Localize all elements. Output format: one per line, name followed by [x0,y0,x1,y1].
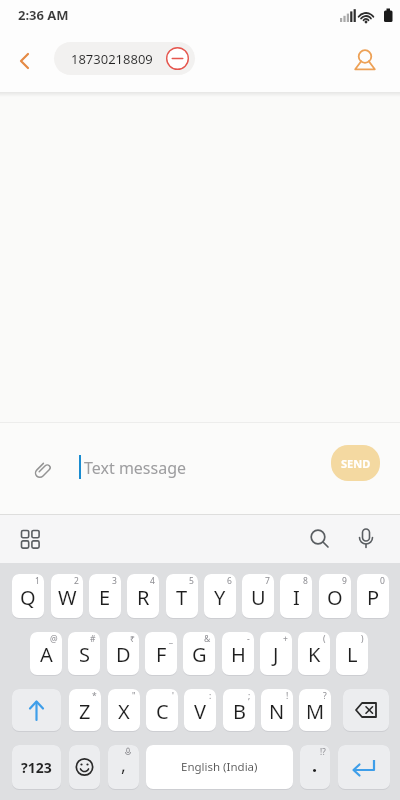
button[interactable]: English (India) [146,745,293,790]
staticText: 18730218809 [71,50,153,68]
button[interactable] [308,527,332,551]
button[interactable]: P [357,574,389,619]
staticText: * [92,690,97,702]
button[interactable] [343,689,389,732]
button[interactable]: C [146,689,178,732]
staticText: # [90,633,96,645]
staticText: J [273,641,279,668]
staticText: U [251,584,266,611]
staticText: Y [214,584,226,611]
staticText: ) [361,633,364,645]
staticText: O [327,584,343,611]
staticText: ; [248,690,251,702]
staticText: C [156,698,169,725]
staticText: " [132,690,136,702]
button[interactable] [0,39,44,83]
button[interactable]: ?123 [12,745,61,790]
button[interactable]: N [261,689,293,732]
button[interactable]: Q [12,574,44,619]
button[interactable]: . [300,745,330,790]
button[interactable]: T [166,574,198,619]
staticText: H [231,641,246,668]
staticText: 9 [342,575,347,587]
button[interactable]: 18730218809 [54,42,195,75]
staticText: _ [169,633,173,645]
staticText: 5 [189,575,194,587]
staticText: N [269,698,285,725]
staticText: M [306,698,325,725]
button[interactable]: L [336,632,368,676]
staticText: 8 [303,575,308,587]
staticText: R [137,584,150,611]
staticText: F [156,641,167,668]
button[interactable]: B [223,689,255,732]
staticText: ( [323,633,326,645]
staticText: P [367,584,380,611]
button[interactable]: K [298,632,330,676]
button[interactable] [351,47,379,75]
button[interactable]: Z [69,689,101,732]
button[interactable] [20,529,40,549]
staticText: : [209,690,212,702]
button[interactable]: G [183,632,215,676]
staticText: ₹ [130,633,135,645]
staticText: . [312,753,318,778]
button[interactable]: A [30,632,62,676]
button[interactable]: E [89,574,121,619]
staticText: !? [320,746,326,757]
staticText: 7 [265,575,270,587]
staticText: SEND [341,456,371,471]
staticText: 2:36 AM [18,6,69,24]
button[interactable] [12,689,61,732]
staticText: I [293,584,300,611]
staticText: V [194,698,206,725]
staticText: + [283,633,288,645]
button[interactable]: V [184,689,216,732]
button[interactable]: I [280,574,312,619]
staticText: L [347,641,358,668]
button[interactable]: , [108,745,139,790]
staticText: W [58,584,77,611]
button[interactable]: S [68,632,100,676]
button[interactable]: U [242,574,274,619]
button[interactable]: H [222,632,254,676]
staticText: 6 [227,575,232,587]
staticText: G [192,641,207,668]
staticText: 0 [380,575,385,587]
button[interactable]: R [127,574,159,619]
staticText: S [79,641,90,668]
button[interactable]: D [107,632,139,676]
staticText: Text message [84,457,187,479]
staticText: X [118,698,130,725]
staticText: 3 [112,575,117,587]
button[interactable]: SEND [331,445,380,481]
button[interactable]: M [299,689,331,732]
staticText: 1 [35,575,40,587]
staticText: Q [20,584,36,611]
button[interactable]: J [260,632,292,676]
staticText: 4 [150,575,155,587]
staticText: & [204,633,211,645]
button[interactable] [34,459,54,479]
staticText: D [116,641,131,668]
staticText: E [99,584,111,611]
staticText: ' [172,690,174,702]
staticText: ?123 [21,758,52,777]
staticText: Z [79,698,91,725]
staticText: T [176,584,188,611]
button[interactable] [69,745,100,790]
staticText: English (India) [181,759,258,775]
staticText: B [233,698,246,725]
button[interactable]: O [319,574,351,619]
staticText: , [121,753,126,778]
button[interactable] [354,527,378,551]
button[interactable]: Y [204,574,236,619]
staticText: K [308,641,321,668]
staticText: 2 [74,575,79,587]
staticText: ! [286,690,289,702]
staticText: A [40,641,53,668]
button[interactable]: W [51,574,83,619]
button[interactable] [338,745,390,790]
button[interactable]: F [145,632,177,676]
button[interactable]: X [108,689,140,732]
